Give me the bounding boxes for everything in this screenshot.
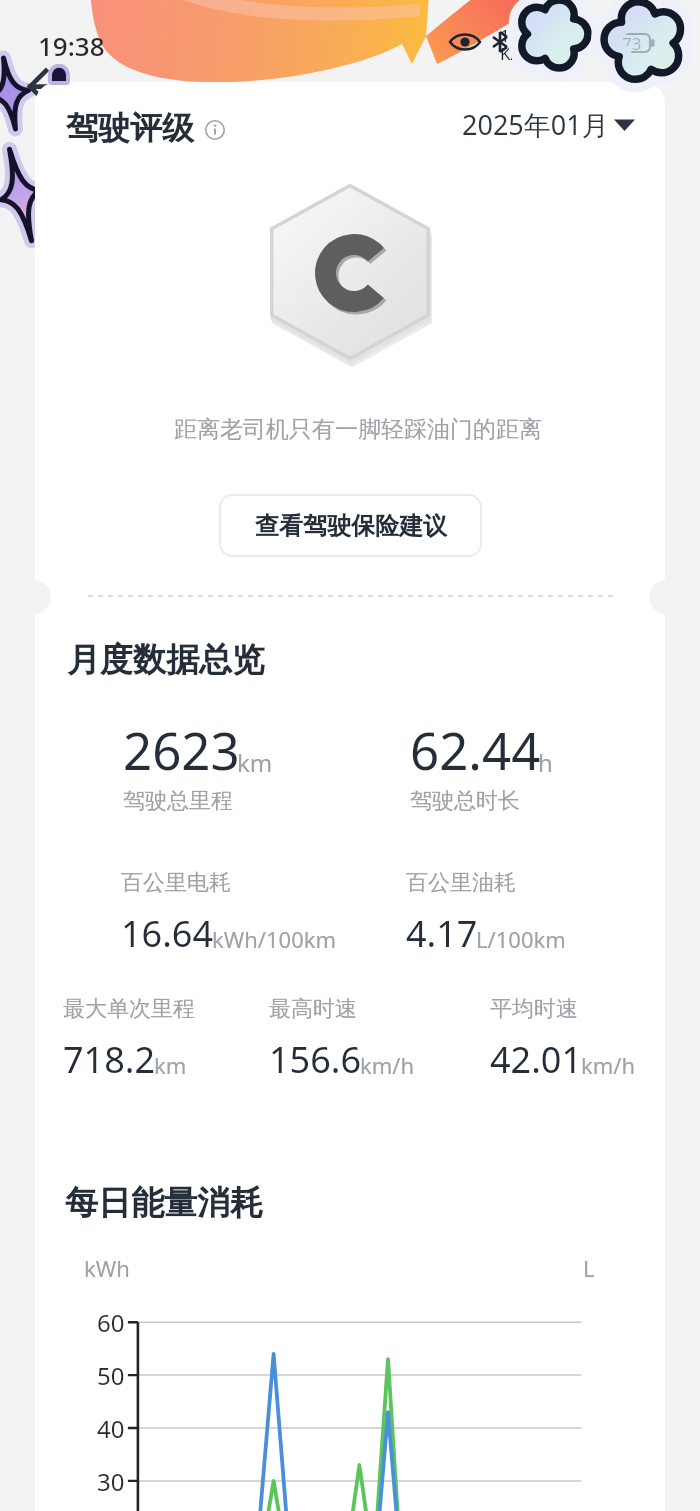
staticText: 60	[97, 1306, 125, 1339]
button[interactable]: 驾驶评级	[66, 108, 225, 148]
staticText: 驾驶总时长	[410, 787, 520, 815]
staticText: 62.44	[410, 715, 541, 784]
staticText: 月度数据总览	[67, 639, 265, 681]
staticText: h	[538, 746, 553, 779]
staticText: 73	[622, 32, 642, 55]
staticText: 查看驾驶保险建议	[255, 511, 447, 541]
staticText: 百公里电耗	[121, 869, 231, 897]
staticText: 50	[97, 1359, 125, 1392]
staticText: 30	[97, 1465, 125, 1498]
staticText: 42.01	[490, 1035, 583, 1084]
staticText: 16.64	[121, 909, 214, 958]
staticText: km	[154, 1050, 187, 1080]
staticText: 40	[97, 1412, 125, 1445]
staticText: km	[237, 746, 273, 779]
staticText: 2025年01月	[462, 106, 609, 143]
staticText: 每日能量消耗	[65, 1182, 263, 1224]
button[interactable]: Back	[20, 60, 76, 116]
staticText: 最高时速	[269, 995, 357, 1023]
staticText: 718.2	[63, 1035, 156, 1084]
staticText: 4.17	[406, 909, 478, 958]
staticText: 156.6	[269, 1035, 362, 1084]
staticText: 驾驶评级	[66, 108, 194, 148]
staticText: 最大单次里程	[63, 995, 195, 1023]
staticText: 平均时速	[490, 995, 578, 1023]
staticText: 百公里油耗	[406, 869, 516, 897]
staticText: 12.6 K/S	[500, 24, 534, 65]
staticText: L/100km	[476, 924, 566, 954]
staticText: 驾驶总里程	[123, 787, 233, 815]
staticText: 2623	[123, 715, 240, 784]
button[interactable]: 2025年01月	[462, 106, 636, 143]
staticText: 距离老司机只有一脚轻踩油门的距离	[174, 415, 542, 444]
button[interactable]: 查看驾驶保险建议	[219, 494, 482, 557]
staticText: L	[583, 1253, 595, 1283]
staticText: km/h	[581, 1050, 636, 1080]
staticText: 19:38	[38, 28, 105, 63]
staticText: km/h	[360, 1050, 415, 1080]
staticText: kWh/100km	[212, 924, 337, 954]
staticText: kWh	[84, 1253, 130, 1283]
